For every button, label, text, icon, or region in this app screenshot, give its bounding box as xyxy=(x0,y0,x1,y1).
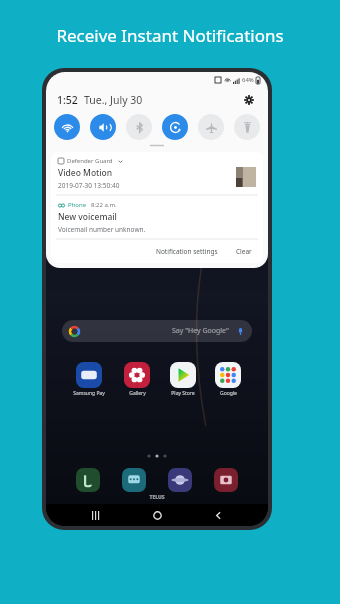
button[interactable]: Auto rotate xyxy=(162,114,188,140)
staticText: Phone xyxy=(68,201,87,209)
button[interactable]: Google xyxy=(213,360,243,399)
button[interactable]: Gallery xyxy=(122,360,152,399)
button[interactable]: Play Store xyxy=(168,360,198,399)
button[interactable]: Camera xyxy=(212,466,240,494)
staticText: Google xyxy=(220,390,237,397)
staticText: Notification settings xyxy=(156,247,218,256)
button[interactable]: Back xyxy=(207,504,229,526)
staticText: Receive Instant Notifications xyxy=(0,24,340,47)
staticText: Tue., July 30 xyxy=(84,93,143,107)
staticText: TELUS xyxy=(46,494,268,501)
button[interactable]: Messages xyxy=(120,466,148,494)
staticText: New voicemail xyxy=(58,211,117,223)
staticText: Defender Guard xyxy=(67,157,113,165)
staticText: 8:22 a.m. xyxy=(91,201,117,209)
staticText: 1:52 xyxy=(57,93,78,107)
button[interactable]: Samsung Pay xyxy=(71,360,107,399)
button[interactable]: Home xyxy=(146,504,168,526)
button[interactable]: Defender Guard xyxy=(51,152,263,195)
button[interactable]: Internet xyxy=(166,466,194,494)
button[interactable]: Airplane mode xyxy=(198,114,224,140)
staticText: 64% xyxy=(242,76,254,84)
button[interactable]: Phone xyxy=(74,466,102,494)
button[interactable]: Bluetooth xyxy=(126,114,152,140)
button[interactable]: Wi-Fi xyxy=(54,114,80,140)
button[interactable]: Clear xyxy=(233,245,255,258)
button[interactable]: Notification settings xyxy=(153,245,221,258)
staticText: Samsung Pay xyxy=(73,390,105,397)
button[interactable]: Flashlight xyxy=(234,114,260,140)
staticText: Play Store xyxy=(171,390,195,397)
button[interactable]: Phone xyxy=(51,196,153,239)
button[interactable]: Sound xyxy=(90,114,116,140)
staticText: Clear xyxy=(236,247,252,256)
button[interactable]: Say "Hey Google" xyxy=(62,320,252,342)
button[interactable]: Settings xyxy=(241,92,257,108)
staticText: Say "Hey Google" xyxy=(172,326,229,336)
staticText: Gallery xyxy=(129,390,146,397)
button[interactable]: Recents xyxy=(85,504,107,526)
staticText: Video Motion xyxy=(58,167,113,179)
staticText: 2019-07-30 13:50:40 xyxy=(58,181,120,190)
staticText: Voicemail number unknown. xyxy=(58,225,146,234)
